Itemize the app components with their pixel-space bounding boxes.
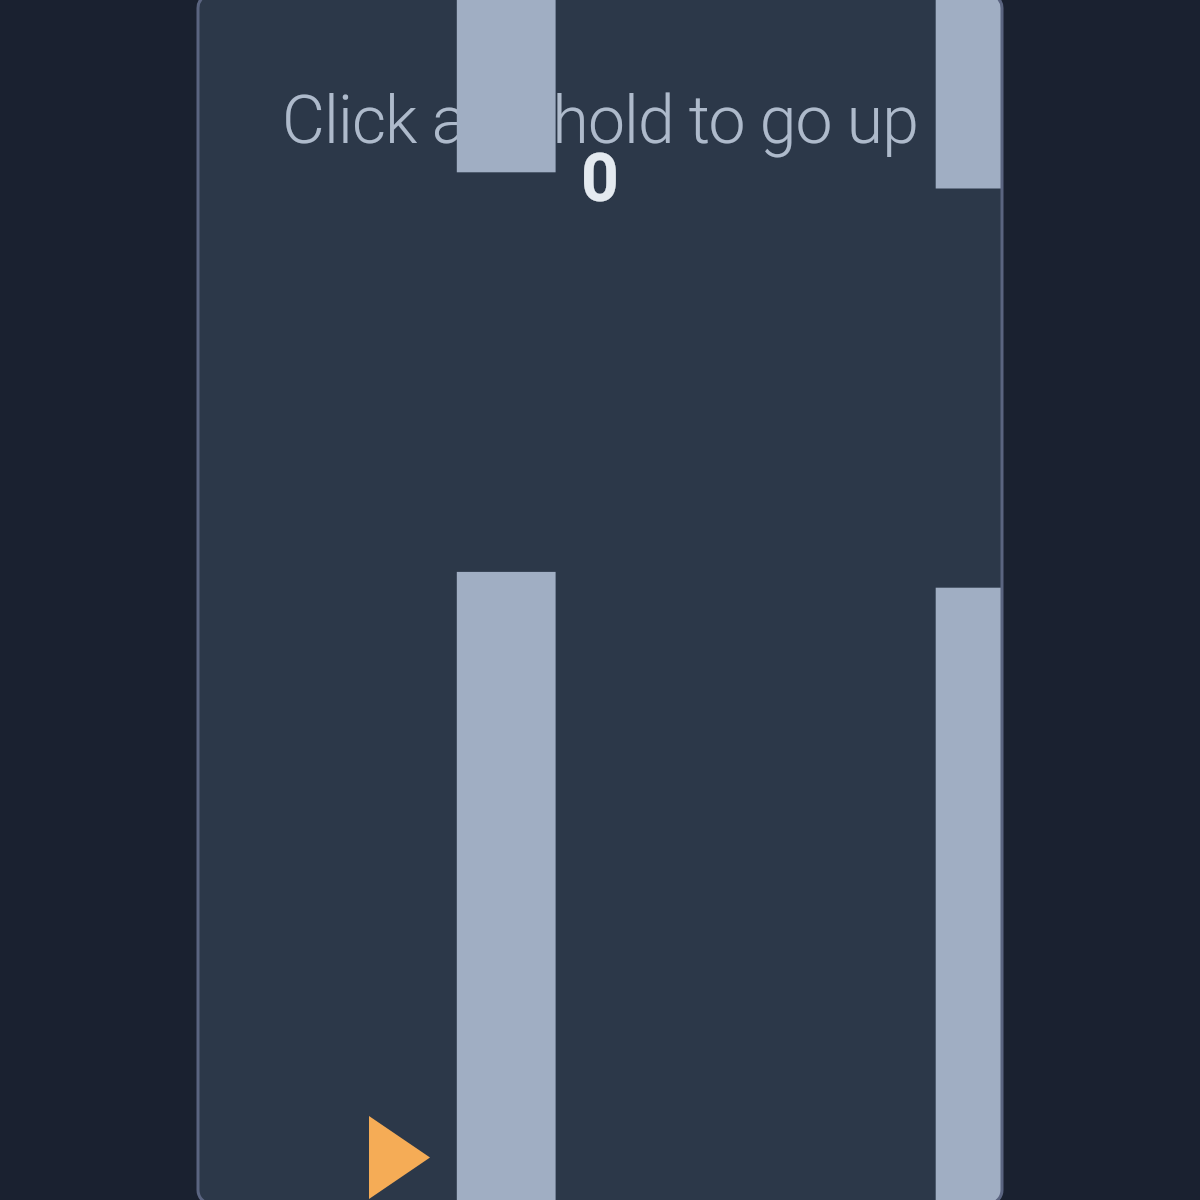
staticText: Click and hold to go up (0, 82, 1200, 159)
button[interactable]: Tap and hold to fly up (198, 0, 1002, 1200)
staticText: 0 (0, 140, 1200, 217)
